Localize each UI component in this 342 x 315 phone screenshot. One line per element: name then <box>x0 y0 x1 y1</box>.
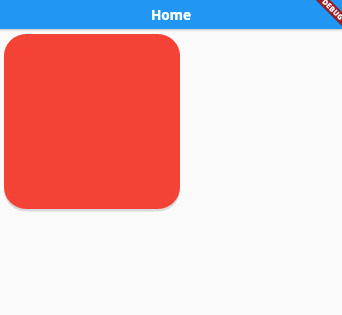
staticText: Home <box>151 6 191 24</box>
button[interactable]: Red card <box>4 34 180 209</box>
staticText: DEBUG <box>319 0 342 23</box>
